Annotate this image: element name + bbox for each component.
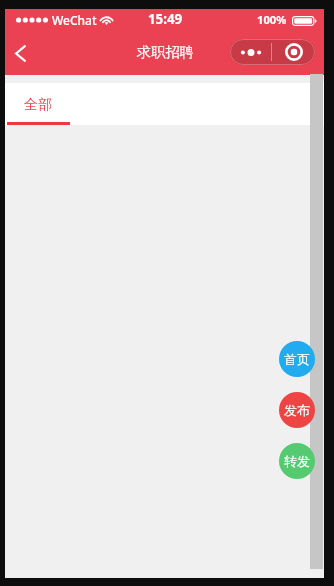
- staticText: 首页: [284, 351, 310, 367]
- button[interactable]: 全部: [5, 83, 70, 125]
- button[interactable]: 发布: [279, 392, 315, 428]
- staticText: 发布: [284, 402, 310, 418]
- staticText: 求职招聘: [137, 43, 194, 61]
- button[interactable]: Close mini program: [272, 39, 315, 65]
- staticText: 转发: [284, 453, 310, 469]
- button[interactable]: 转发: [279, 443, 315, 479]
- staticText: 15:49: [148, 10, 183, 28]
- staticText: WeChat: [52, 12, 97, 28]
- button[interactable]: More options: [230, 39, 271, 65]
- staticText: 全部: [24, 96, 52, 114]
- button[interactable]: 首页: [279, 341, 315, 377]
- button[interactable]: Back: [5, 31, 36, 75]
- staticText: 100%: [257, 12, 287, 27]
